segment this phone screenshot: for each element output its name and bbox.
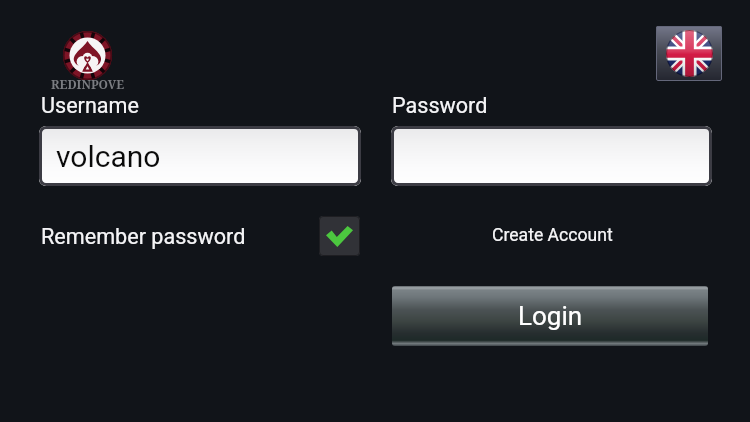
staticText: Password xyxy=(392,93,488,118)
button[interactable] xyxy=(391,126,712,186)
staticText: Login xyxy=(518,301,583,331)
staticText: volcano xyxy=(56,139,161,174)
button[interactable]: Remember password checkbox xyxy=(319,216,360,256)
staticText: Create Account xyxy=(492,225,613,246)
button[interactable]: Change language xyxy=(656,26,722,81)
button[interactable]: Create Account xyxy=(482,218,622,252)
staticText: REDINPOVE xyxy=(50,76,125,92)
staticText: Remember password xyxy=(41,224,246,249)
staticText: Username xyxy=(41,93,139,118)
button[interactable]: volcano xyxy=(39,126,361,186)
button[interactable]: Login xyxy=(392,286,708,346)
